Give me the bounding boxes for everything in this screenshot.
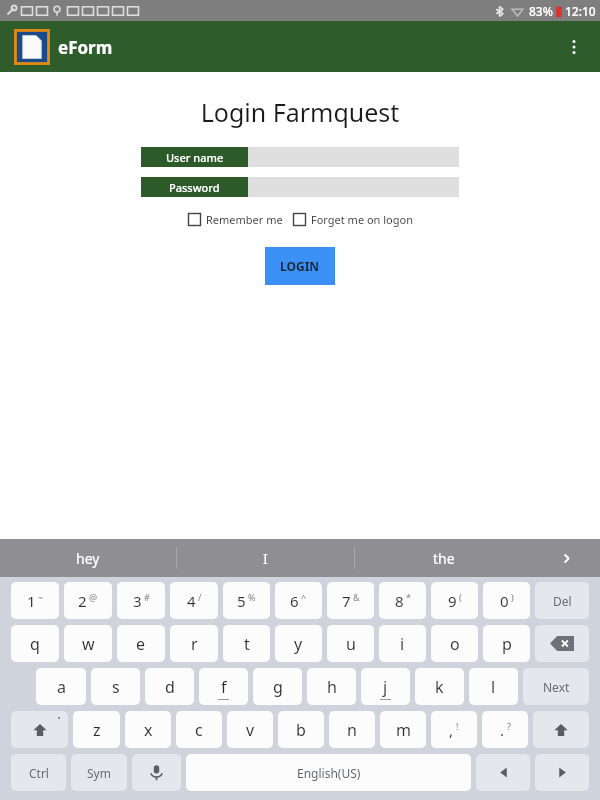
staticText: ^ bbox=[301, 591, 307, 603]
button[interactable]: c bbox=[176, 711, 222, 748]
button[interactable]: English(US) bbox=[186, 754, 471, 791]
button[interactable]: m bbox=[380, 711, 426, 748]
button[interactable]: the bbox=[355, 539, 532, 577]
staticText: g bbox=[273, 676, 283, 698]
button[interactable]: z bbox=[73, 711, 120, 748]
button[interactable]: n bbox=[329, 711, 375, 748]
staticText: 8 bbox=[395, 591, 404, 611]
staticText: * bbox=[406, 591, 411, 603]
button[interactable]: g bbox=[253, 668, 302, 705]
staticText: @ bbox=[89, 591, 98, 603]
staticText: z bbox=[93, 719, 101, 741]
button[interactable]: 1 bbox=[11, 582, 59, 619]
button[interactable]: Remember me bbox=[188, 212, 283, 227]
staticText: Login Farmquest bbox=[0, 95, 600, 129]
button[interactable]: o bbox=[431, 625, 478, 662]
button[interactable]: Del bbox=[535, 582, 589, 619]
staticText: ) bbox=[511, 591, 514, 603]
staticText: Forget me on logon bbox=[311, 212, 413, 227]
button[interactable]: u bbox=[327, 625, 374, 662]
button[interactable]: i bbox=[379, 625, 426, 662]
button[interactable]: hey bbox=[0, 539, 176, 577]
button[interactable]: b bbox=[278, 711, 324, 748]
button[interactable]: 6 bbox=[275, 582, 322, 619]
button[interactable]: q bbox=[11, 625, 59, 662]
button[interactable]: 0 bbox=[483, 582, 530, 619]
button[interactable]: v bbox=[227, 711, 273, 748]
button[interactable]: I bbox=[177, 539, 354, 577]
staticText: User name bbox=[166, 150, 224, 165]
staticText: ! bbox=[456, 720, 459, 732]
staticText: 2 bbox=[78, 591, 87, 611]
button[interactable]: . bbox=[482, 711, 528, 748]
button[interactable]: y bbox=[275, 625, 322, 662]
button[interactable]: Sym bbox=[71, 754, 127, 791]
button[interactable]: Move right bbox=[535, 754, 589, 791]
staticText: ( bbox=[459, 591, 462, 603]
staticText: m bbox=[396, 719, 411, 741]
button[interactable]: p bbox=[483, 625, 530, 662]
staticText: y bbox=[294, 633, 303, 655]
button[interactable]: LOGIN bbox=[265, 247, 335, 285]
button[interactable]: 5 bbox=[223, 582, 270, 619]
button[interactable]: r bbox=[170, 625, 218, 662]
staticText: Ctrl bbox=[29, 765, 49, 781]
button[interactable]: j bbox=[361, 668, 410, 705]
button[interactable]: e bbox=[117, 625, 165, 662]
staticText: Sym bbox=[87, 765, 111, 781]
staticText: i bbox=[400, 633, 405, 655]
staticText: c bbox=[195, 719, 203, 741]
button[interactable]: Move left bbox=[476, 754, 530, 791]
staticText: w bbox=[82, 633, 95, 655]
button[interactable]: Voice input bbox=[132, 754, 181, 791]
button[interactable]: Forget me on logon bbox=[293, 212, 413, 227]
staticText: Next bbox=[543, 679, 570, 695]
button[interactable]: h bbox=[307, 668, 356, 705]
staticText: e bbox=[136, 633, 146, 655]
button[interactable]: 3 bbox=[117, 582, 165, 619]
staticText: t bbox=[244, 633, 250, 655]
button[interactable]: k bbox=[415, 668, 464, 705]
button[interactable]: More suggestions bbox=[532, 539, 600, 577]
staticText: 5 bbox=[237, 591, 246, 611]
button[interactable]: 9 bbox=[431, 582, 478, 619]
staticText: LOGIN bbox=[280, 258, 320, 274]
staticText: 3 bbox=[133, 591, 142, 611]
staticText: r bbox=[191, 633, 198, 655]
button[interactable]: , bbox=[431, 711, 477, 748]
staticText: the bbox=[433, 549, 455, 568]
staticText: Del bbox=[553, 593, 572, 609]
button[interactable]: Next bbox=[523, 668, 589, 705]
button[interactable]: l bbox=[469, 668, 518, 705]
button[interactable]: User name bbox=[141, 147, 459, 167]
staticText: 83% bbox=[529, 3, 553, 19]
button[interactable]: f bbox=[199, 668, 248, 705]
button[interactable]: Shift bbox=[533, 711, 589, 748]
button[interactable]: Shift bbox=[11, 711, 68, 748]
staticText: eForm bbox=[58, 36, 113, 59]
button[interactable]: 2 bbox=[64, 582, 112, 619]
staticText: l bbox=[491, 676, 496, 698]
button[interactable]: 4 bbox=[170, 582, 218, 619]
staticText: Remember me bbox=[206, 212, 283, 227]
button[interactable]: Backspace bbox=[535, 625, 589, 662]
staticText: 7 bbox=[342, 591, 351, 611]
staticText: q bbox=[30, 633, 40, 655]
button[interactable]: 8 bbox=[379, 582, 426, 619]
staticText: 1 bbox=[27, 591, 36, 611]
button[interactable]: Password bbox=[141, 177, 459, 197]
button[interactable]: w bbox=[64, 625, 112, 662]
button[interactable]: x bbox=[125, 711, 171, 748]
button[interactable]: a bbox=[36, 668, 86, 705]
staticText: f bbox=[221, 676, 227, 698]
staticText: s bbox=[112, 676, 120, 698]
button[interactable]: Ctrl bbox=[11, 754, 66, 791]
button[interactable]: d bbox=[145, 668, 194, 705]
button[interactable]: t bbox=[223, 625, 270, 662]
button[interactable]: 7 bbox=[327, 582, 374, 619]
button[interactable]: More options bbox=[554, 27, 594, 67]
button[interactable]: s bbox=[91, 668, 140, 705]
staticText: o bbox=[450, 633, 460, 655]
staticText: ~ bbox=[38, 591, 44, 603]
staticText: 9 bbox=[448, 591, 457, 611]
